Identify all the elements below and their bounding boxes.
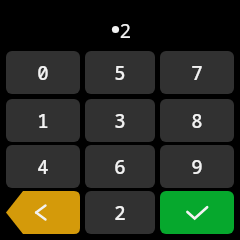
button[interactable]: 5: [85, 51, 155, 94]
staticText: 9: [191, 154, 203, 180]
button[interactable]: 1: [6, 99, 80, 142]
button[interactable]: 9: [160, 145, 234, 188]
staticText: 8: [191, 108, 203, 134]
button[interactable]: 0: [6, 51, 80, 94]
staticText: 2: [114, 200, 126, 226]
button[interactable]: 4: [6, 145, 80, 188]
button[interactable]: 3: [85, 99, 155, 142]
staticText: 3: [114, 108, 126, 134]
staticText: 6: [114, 154, 126, 180]
staticText: 2: [120, 18, 131, 42]
button[interactable]: Backspace: [6, 191, 80, 234]
staticText: 1: [37, 108, 49, 134]
staticText: 0: [37, 60, 49, 86]
button[interactable]: 2: [85, 191, 155, 234]
button[interactable]: 7: [160, 51, 234, 94]
staticText: 4: [37, 154, 49, 180]
button[interactable]: 8: [160, 99, 234, 142]
button[interactable]: 6: [85, 145, 155, 188]
staticText: 5: [114, 60, 126, 86]
staticText: 7: [191, 60, 203, 86]
button[interactable]: Confirm: [160, 191, 234, 234]
